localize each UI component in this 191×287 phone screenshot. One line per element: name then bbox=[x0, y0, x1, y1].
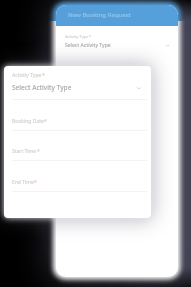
staticText: Booking Date bbox=[12, 118, 44, 125]
staticText: Select Activity Type bbox=[65, 42, 111, 49]
staticText: * bbox=[37, 148, 40, 155]
staticText: * bbox=[89, 34, 92, 39]
button[interactable]: End Time bbox=[4, 179, 151, 191]
staticText: End Time bbox=[12, 179, 34, 186]
button[interactable]: Booking Date bbox=[4, 118, 151, 130]
staticText: Select Activity Type bbox=[12, 83, 72, 92]
button[interactable]: Start Time bbox=[4, 148, 151, 160]
staticText: New Booking Request bbox=[68, 11, 132, 19]
staticText: * bbox=[44, 118, 47, 125]
staticText: Start Time bbox=[12, 148, 37, 155]
staticText: * bbox=[42, 72, 45, 79]
staticText: * bbox=[34, 179, 37, 186]
staticText: Activity Type bbox=[65, 34, 89, 39]
staticText: Activity Type bbox=[12, 72, 42, 79]
button[interactable]: Activity Type bbox=[60, 30, 174, 61]
button[interactable]: Activity Type bbox=[4, 69, 151, 99]
